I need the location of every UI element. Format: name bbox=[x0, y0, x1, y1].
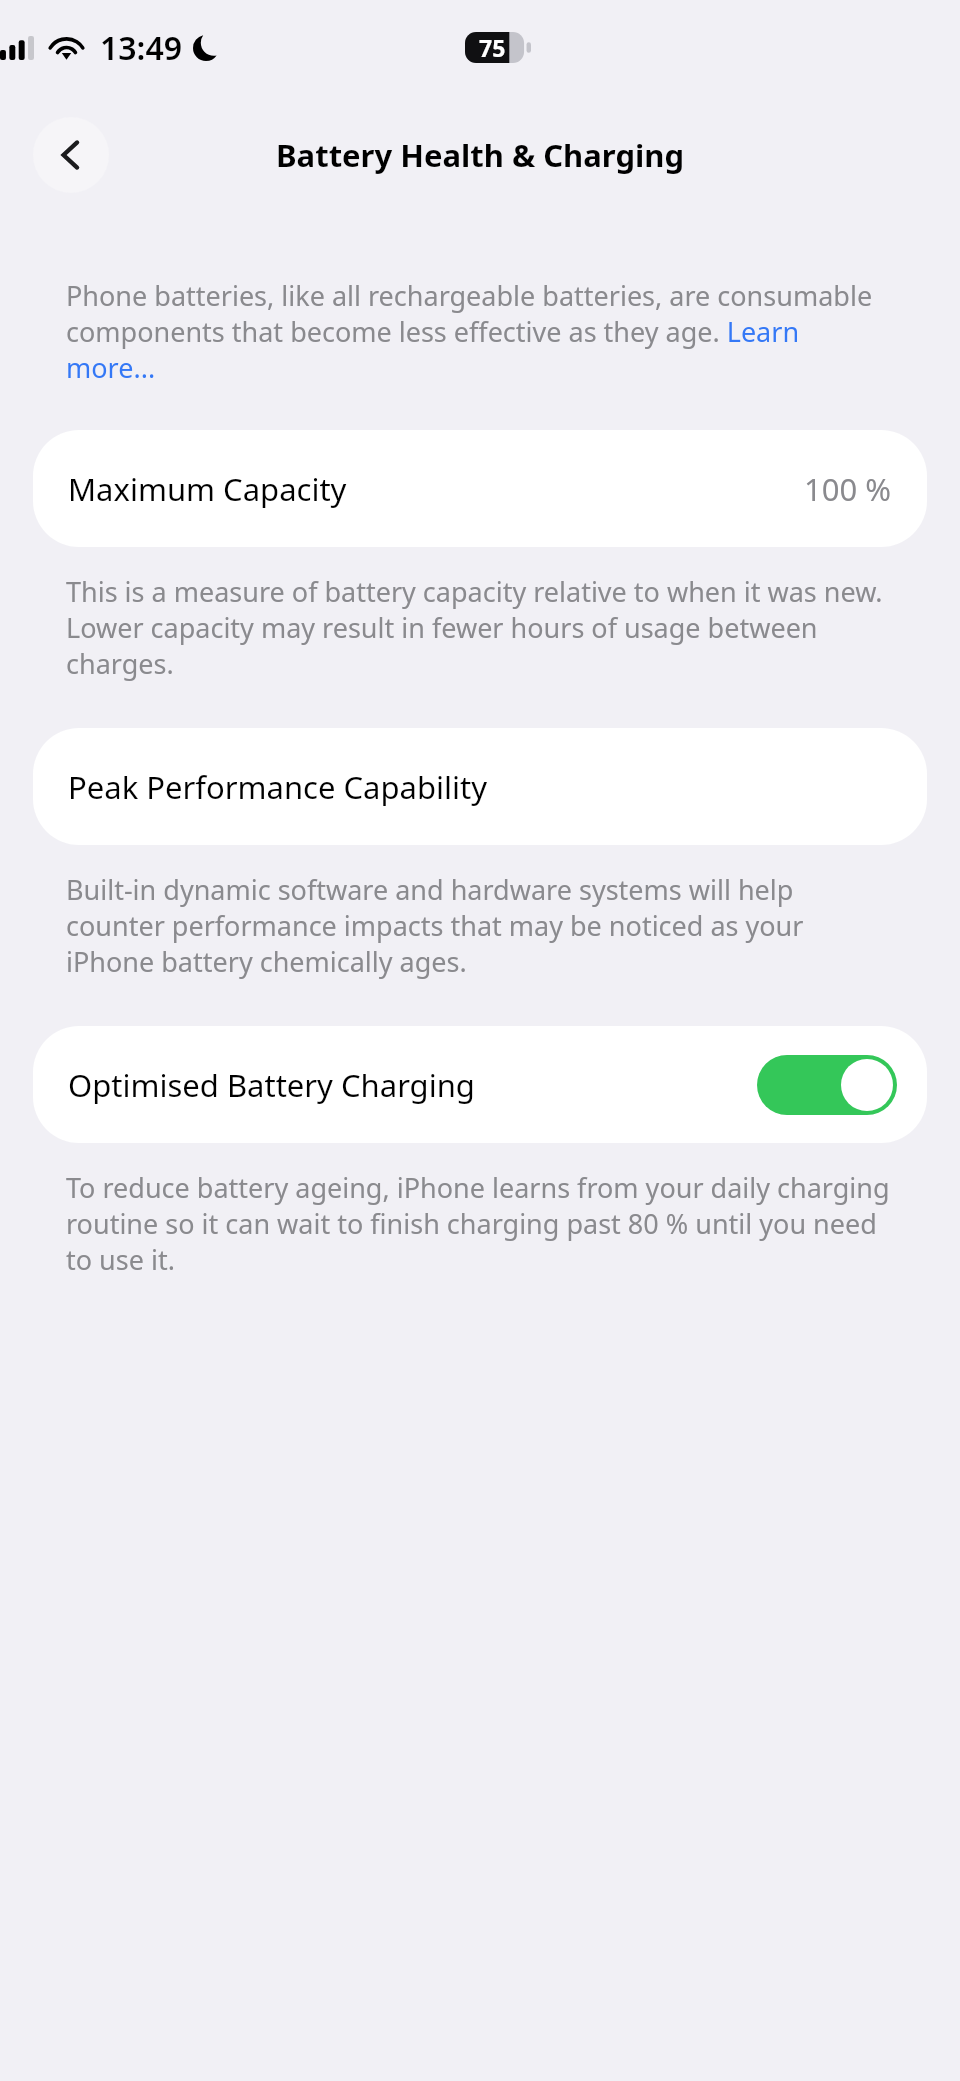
button[interactable]: Optimised Battery Charging bbox=[33, 1026, 927, 1143]
staticText: Built-in dynamic software and hardware s… bbox=[66, 871, 894, 980]
staticText: 100 % bbox=[804, 468, 892, 510]
staticText: Maximum Capacity bbox=[68, 468, 347, 510]
button[interactable]: Maximum Capacity bbox=[33, 430, 927, 547]
staticText: Phone batteries, like all rechargeable b… bbox=[66, 277, 894, 386]
staticText: To reduce battery ageing, iPhone learns … bbox=[66, 1169, 894, 1278]
staticText: Optimised Battery Charging bbox=[68, 1064, 475, 1106]
staticText: Battery Health & Charging bbox=[276, 134, 684, 176]
staticText: 75 bbox=[479, 32, 506, 63]
staticText: Peak Performance Capability bbox=[68, 766, 487, 808]
button[interactable]: Optimised Battery Charging toggle, on bbox=[757, 1055, 897, 1115]
staticText: 13:49 bbox=[100, 26, 183, 70]
button[interactable]: Peak Performance Capability bbox=[33, 728, 927, 845]
button[interactable]: Back bbox=[33, 117, 109, 193]
staticText: This is a measure of battery capacity re… bbox=[66, 573, 894, 682]
